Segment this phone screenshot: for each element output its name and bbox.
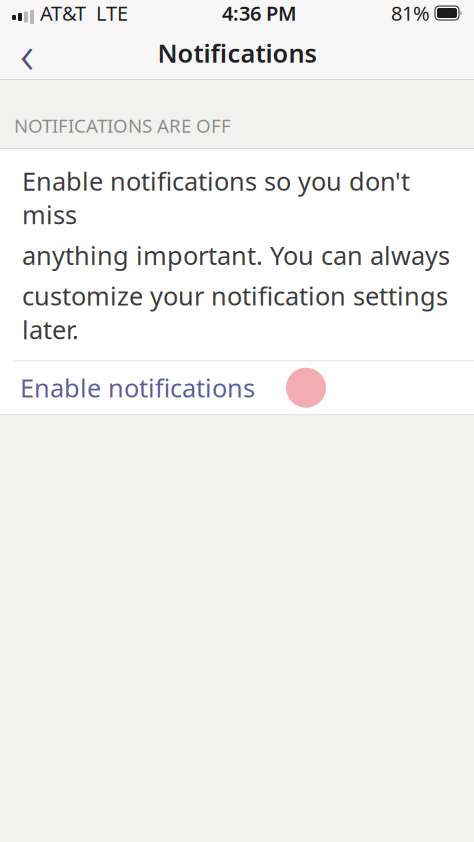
staticText: AT&T xyxy=(40,0,86,26)
button[interactable]: Back xyxy=(0,26,54,80)
button[interactable]: Enable notifications xyxy=(0,361,474,414)
staticText: Enable notifications xyxy=(20,371,255,404)
staticText: NOTIFICATIONS ARE OFF xyxy=(14,113,231,138)
staticText: 4:36 PM xyxy=(222,0,297,26)
staticText: ‹ xyxy=(20,18,34,88)
staticText: 81% xyxy=(391,0,430,26)
staticText: Notifications xyxy=(157,36,316,70)
staticText: customize your notification settings lat… xyxy=(22,279,448,346)
staticText: LTE xyxy=(96,0,128,26)
staticText: Enable notifications so you don't miss xyxy=(22,164,410,231)
staticText: anything important. You can always xyxy=(22,238,450,272)
